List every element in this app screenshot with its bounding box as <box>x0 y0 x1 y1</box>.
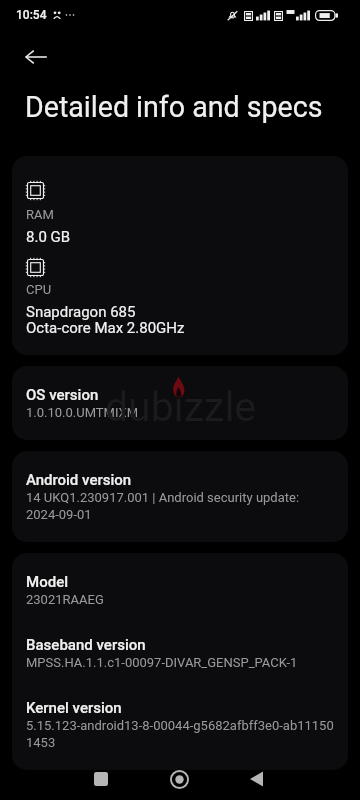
staticText: 1453 <box>26 734 56 751</box>
button[interactable]: RAM <box>12 156 348 355</box>
button[interactable]: Recents <box>78 756 124 800</box>
staticText: Baseband version <box>26 635 146 654</box>
staticText: 8.0 GB <box>26 229 71 245</box>
staticText: 14 UKQ1.230917.001 | Android security up… <box>26 489 334 523</box>
button[interactable]: Back <box>233 756 279 800</box>
button[interactable]: Home <box>156 756 202 800</box>
staticText: OS version <box>26 385 99 404</box>
staticText: MPSS.HA.1.1.c1-00097-DIVAR_GENSP_PACK-1 <box>26 654 298 671</box>
staticText: 10:54 <box>16 8 47 22</box>
staticText: RAM <box>26 206 54 223</box>
staticText: Detailed info and specs <box>25 90 323 124</box>
staticText: 1.0.10.0.UMTMIXM <box>26 404 139 421</box>
staticText: Snapdragon 685 <box>26 304 136 320</box>
button[interactable]: OS version <box>12 366 348 440</box>
staticText: dubizzle <box>105 383 257 431</box>
staticText: Octa-core Max 2.80GHz <box>26 320 185 336</box>
staticText: Android version <box>26 470 132 489</box>
button[interactable]: Back <box>14 35 58 79</box>
staticText: 23021RAAEG <box>26 591 104 608</box>
staticText: Model <box>26 572 69 591</box>
button[interactable]: Android version <box>12 451 348 542</box>
staticText: Kernel version <box>26 698 122 717</box>
staticText: CPU <box>26 281 52 298</box>
staticText: 5.15.123-android13-8-00044-g5682afbff3e0… <box>26 717 334 734</box>
button[interactable]: Model <box>12 553 348 770</box>
